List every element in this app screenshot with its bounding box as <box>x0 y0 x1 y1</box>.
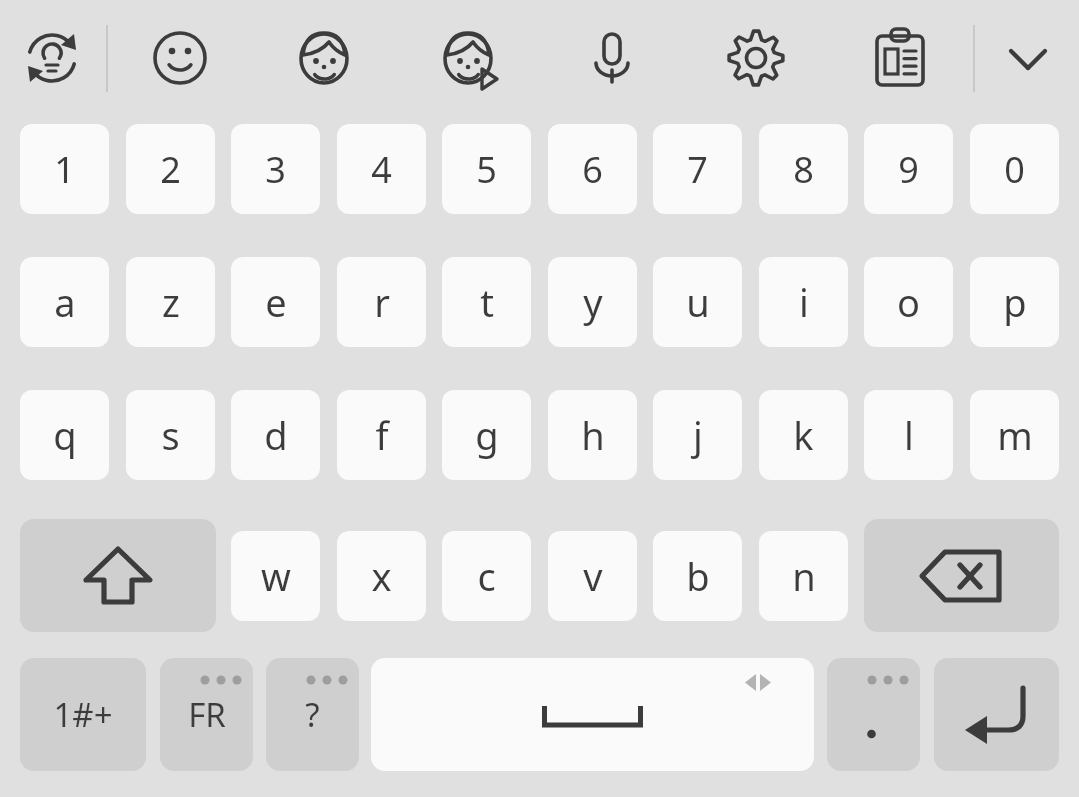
button[interactable]: Emoji <box>144 22 216 94</box>
button[interactable]: 0 <box>970 124 1059 214</box>
staticText: e <box>265 276 287 328</box>
button[interactable]: 2 <box>126 124 215 214</box>
button[interactable]: j <box>653 390 742 480</box>
button[interactable]: Settings <box>720 22 792 94</box>
button[interactable]: u <box>653 257 742 347</box>
staticText: 8 <box>793 145 814 194</box>
staticText: w <box>261 550 291 602</box>
staticText: o <box>897 276 920 328</box>
staticText: h <box>581 409 605 461</box>
button[interactable]: c <box>442 531 531 621</box>
button[interactable]: q <box>20 390 109 480</box>
staticText: x <box>371 550 392 602</box>
button[interactable]: 9 <box>864 124 953 214</box>
staticText: v <box>583 550 603 602</box>
staticText: 2 <box>160 145 181 194</box>
staticText: 1 <box>54 145 75 194</box>
button[interactable]: k <box>759 390 848 480</box>
staticText: r <box>374 276 390 328</box>
button[interactable]: ? <box>266 658 359 771</box>
button[interactable]: Space <box>371 658 814 771</box>
button[interactable]: p <box>970 257 1059 347</box>
button[interactable]: y <box>548 257 637 347</box>
staticText: FR <box>188 692 226 737</box>
button[interactable]: Clipboard <box>864 22 936 94</box>
button[interactable]: d <box>231 390 320 480</box>
button[interactable]: 1 <box>20 124 109 214</box>
staticText: 5 <box>476 145 497 194</box>
staticText: a <box>54 276 76 328</box>
staticText: g <box>475 409 499 461</box>
staticText: k <box>793 409 814 461</box>
button[interactable]: e <box>231 257 320 347</box>
staticText: d <box>264 409 288 461</box>
button[interactable]: Animated stickers <box>432 22 504 94</box>
staticText: ? <box>305 692 320 737</box>
button[interactable]: 3 <box>231 124 320 214</box>
staticText: f <box>375 409 389 461</box>
button[interactable]: Stickers <box>288 22 360 94</box>
button[interactable]: h <box>548 390 637 480</box>
button[interactable]: x <box>337 531 426 621</box>
staticText: j <box>693 409 703 461</box>
button[interactable]: Shift <box>20 519 216 632</box>
staticText: l <box>904 409 914 461</box>
button[interactable]: 6 <box>548 124 637 214</box>
button[interactable]: 8 <box>759 124 848 214</box>
staticText: 1#+ <box>53 692 113 737</box>
button[interactable]: 1#+ <box>20 658 146 771</box>
button[interactable]: g <box>442 390 531 480</box>
button[interactable]: f <box>337 390 426 480</box>
button[interactable]: v <box>548 531 637 621</box>
button[interactable]: Voice input <box>576 22 648 94</box>
button[interactable]: Backspace <box>864 519 1059 632</box>
button[interactable]: FR <box>160 658 253 771</box>
staticText: 9 <box>898 145 919 194</box>
button[interactable]: s <box>126 390 215 480</box>
button[interactable]: Enter <box>934 658 1059 771</box>
button[interactable]: w <box>231 531 320 621</box>
button[interactable]: Translate <box>16 22 88 94</box>
button[interactable]: n <box>759 531 848 621</box>
button[interactable]: i <box>759 257 848 347</box>
staticText: z <box>162 276 180 328</box>
button[interactable]: 7 <box>653 124 742 214</box>
staticText: 3 <box>265 145 286 194</box>
button[interactable]: l <box>864 390 953 480</box>
staticText: m <box>997 409 1033 461</box>
button[interactable]: t <box>442 257 531 347</box>
staticText: t <box>480 276 494 328</box>
button[interactable]: o <box>864 257 953 347</box>
button[interactable]: Hide keyboard <box>992 22 1064 94</box>
staticText: q <box>53 409 77 461</box>
staticText: n <box>792 550 816 602</box>
button[interactable]: z <box>126 257 215 347</box>
staticText: 7 <box>687 145 708 194</box>
staticText: b <box>686 550 710 602</box>
staticText: i <box>799 276 809 328</box>
staticText: c <box>477 550 496 602</box>
staticText: 0 <box>1004 145 1025 194</box>
staticText: p <box>1003 276 1027 328</box>
staticText: y <box>583 276 603 328</box>
button[interactable]: Period <box>827 658 920 771</box>
button[interactable]: 5 <box>442 124 531 214</box>
button[interactable]: 4 <box>337 124 426 214</box>
button[interactable]: b <box>653 531 742 621</box>
button[interactable]: a <box>20 257 109 347</box>
staticText: 4 <box>371 145 392 194</box>
staticText: s <box>161 409 180 461</box>
button[interactable]: m <box>970 390 1059 480</box>
staticText: u <box>686 276 710 328</box>
button[interactable]: r <box>337 257 426 347</box>
staticText: 6 <box>582 145 603 194</box>
